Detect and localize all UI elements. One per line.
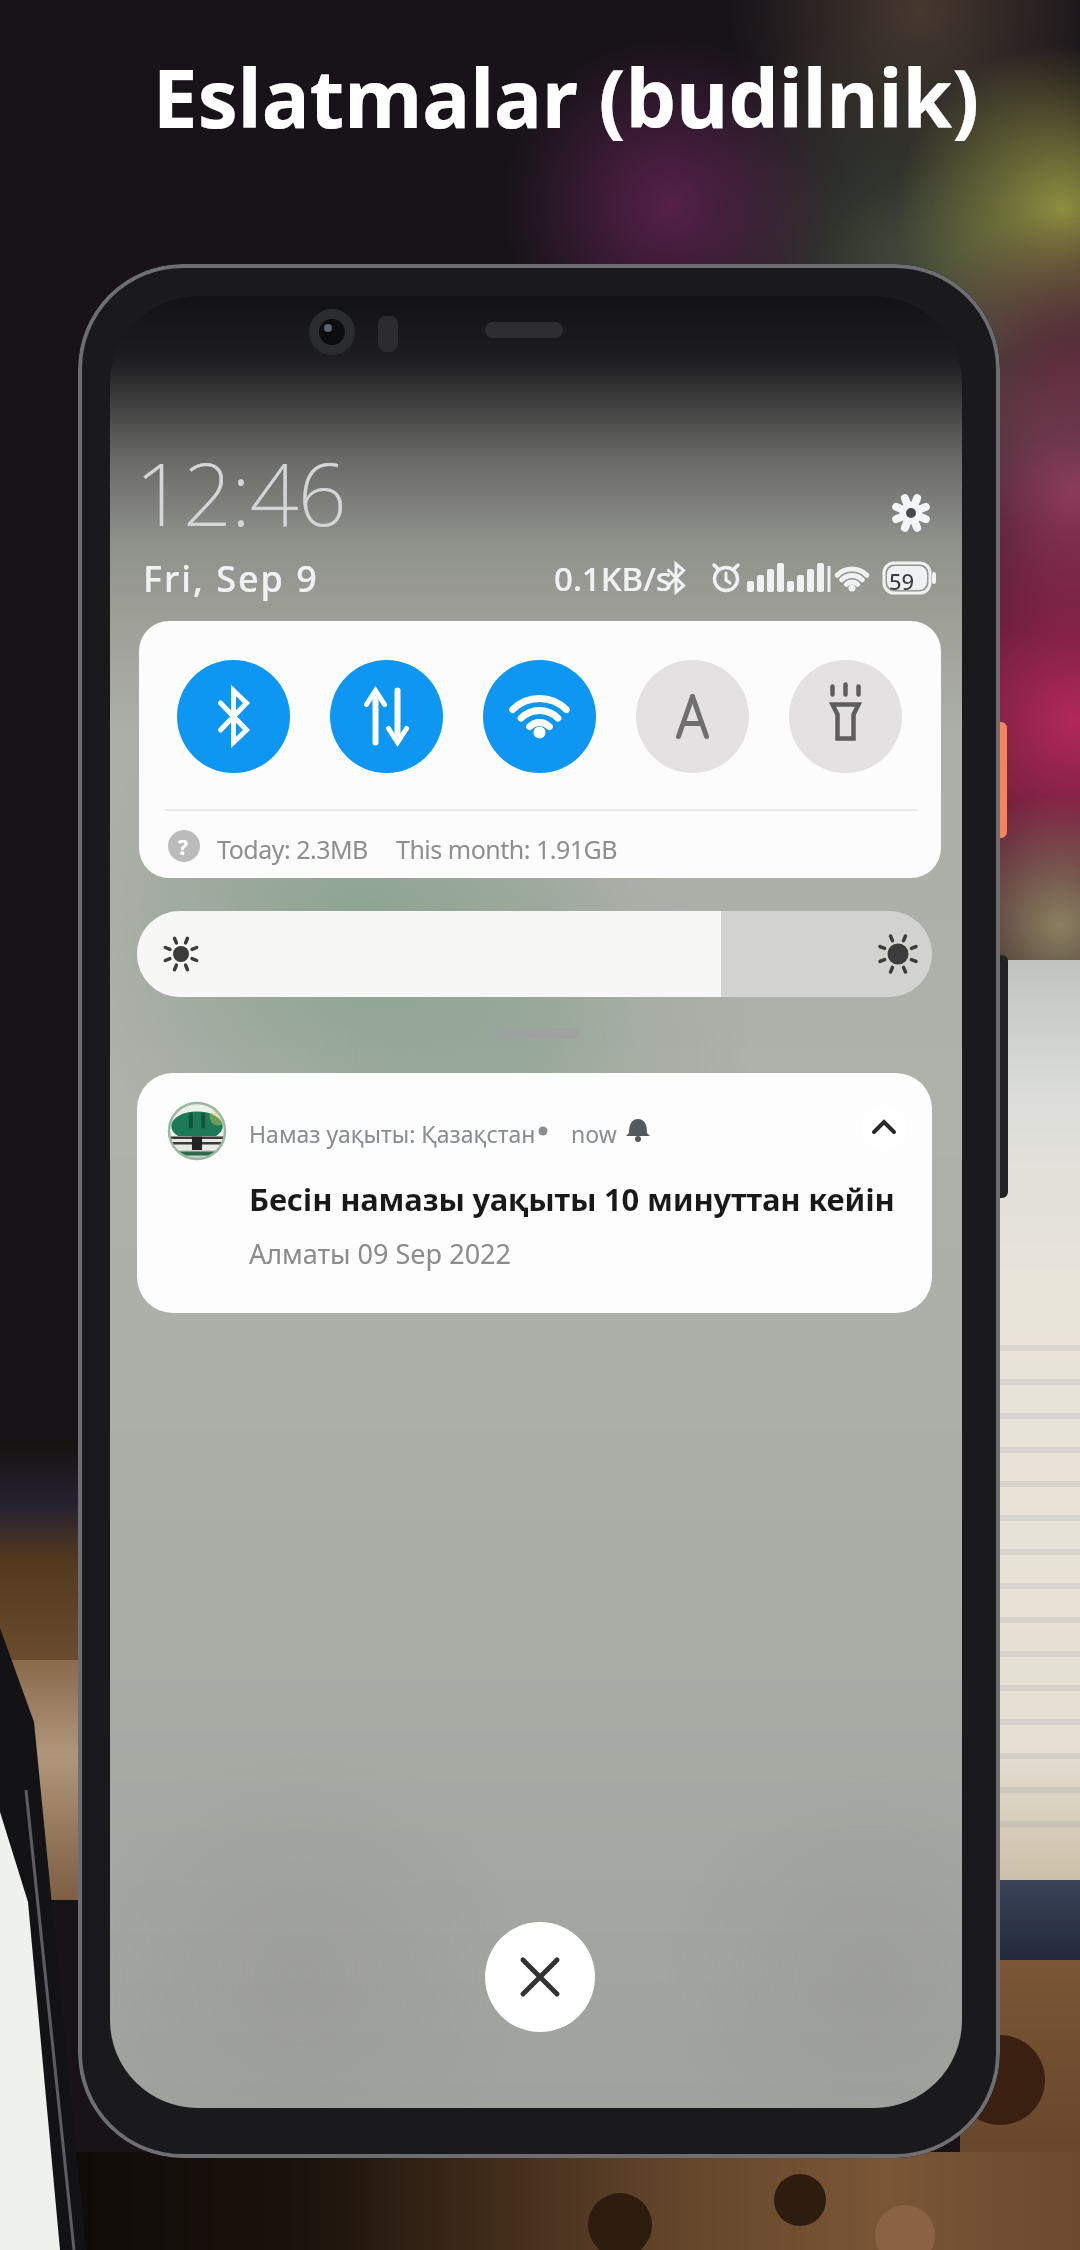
button[interactable]: Намаз уақыты: Қазақстан [137, 1073, 932, 1313]
button[interactable] [483, 660, 596, 773]
button[interactable] [330, 660, 443, 773]
staticText: 0.1KB/s [554, 556, 672, 601]
staticText: Today: 2.3MB [217, 832, 368, 866]
button[interactable] [881, 483, 941, 543]
button[interactable] [177, 660, 290, 773]
button[interactable] [789, 660, 902, 773]
button[interactable] [636, 660, 749, 773]
staticText: Алматы 09 Sep 2022 [249, 1235, 511, 1272]
staticText: This month: 1.91GB [396, 832, 617, 866]
button[interactable] [861, 1105, 907, 1151]
button[interactable] [137, 911, 932, 997]
staticText: Намаз уақыты: Қазақстан [249, 1118, 536, 1149]
staticText: Fri, Sep 9 [143, 554, 319, 603]
staticText: 59 [889, 566, 915, 596]
staticText: now [571, 1118, 617, 1149]
staticText: Eslatmalar (budilnik) [26, 42, 1080, 151]
staticText: 12:46 [135, 434, 346, 551]
staticText: ? [178, 833, 189, 862]
button[interactable] [485, 1922, 595, 2032]
staticText: Бесін намазы уақыты 10 минуттан кейін [249, 1178, 895, 1220]
